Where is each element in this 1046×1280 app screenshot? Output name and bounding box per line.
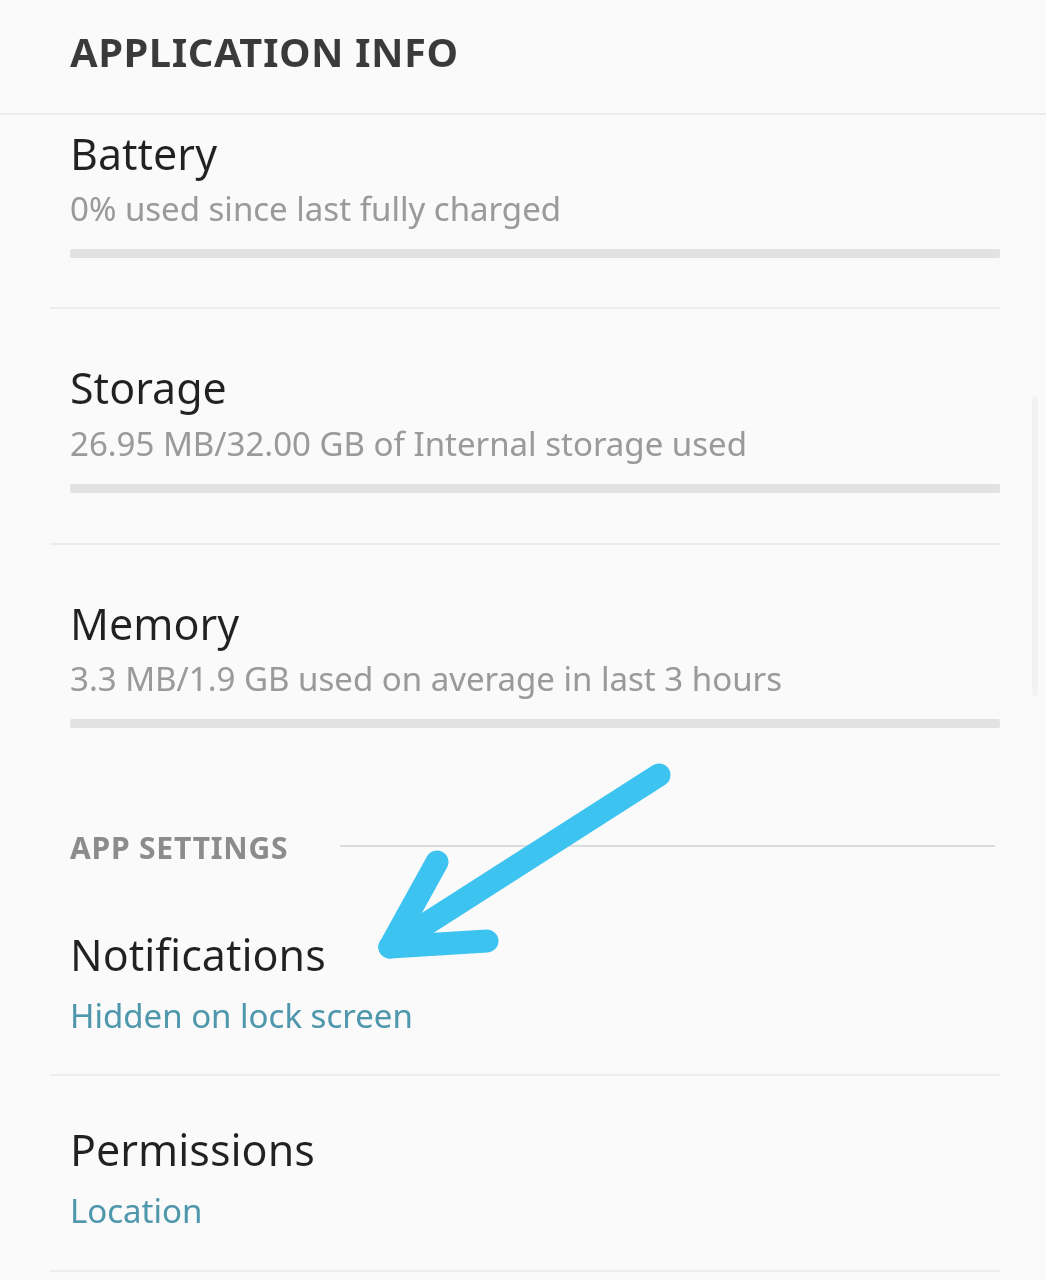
staticText: APPLICATION INFO <box>70 24 459 78</box>
staticText: 3.3 MB/1.9 GB used on average in last 3 … <box>70 656 783 701</box>
staticText: 0% used since last fully charged <box>70 186 562 231</box>
staticText: Memory <box>70 594 240 653</box>
staticText: Hidden on lock screen <box>70 993 413 1038</box>
button[interactable] <box>0 309 1046 543</box>
staticText: 26.95 MB/32.00 GB of Internal storage us… <box>70 421 747 466</box>
staticText: Permissions <box>70 1120 315 1179</box>
button[interactable] <box>0 890 1046 1075</box>
staticText: Notifications <box>70 925 326 984</box>
staticText: APP SETTINGS <box>70 827 289 868</box>
staticText: Battery <box>70 124 218 183</box>
staticText: Storage <box>70 358 227 417</box>
other: Annotation arrow pointing to Notificatio… <box>0 0 1046 1280</box>
button[interactable] <box>0 115 1046 308</box>
button[interactable] <box>0 545 1046 780</box>
staticText: Location <box>70 1188 203 1233</box>
button[interactable] <box>0 1076 1046 1270</box>
